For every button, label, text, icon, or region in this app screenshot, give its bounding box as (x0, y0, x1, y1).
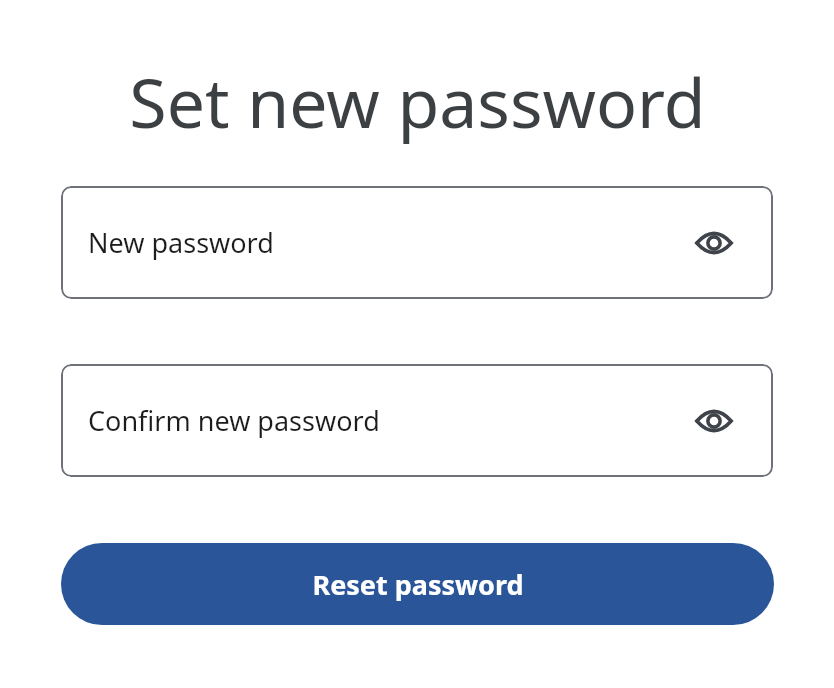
button[interactable]: Confirm new password (61, 364, 773, 477)
staticText: Confirm new password (88, 402, 380, 439)
button[interactable]: Reset password (61, 543, 774, 625)
staticText: New password (88, 224, 274, 261)
button[interactable]: Show password (692, 399, 736, 443)
staticText: Set new password (129, 55, 706, 148)
button[interactable]: New password (61, 186, 773, 299)
staticText: Reset password (312, 566, 524, 603)
button[interactable]: Show password (692, 221, 736, 265)
